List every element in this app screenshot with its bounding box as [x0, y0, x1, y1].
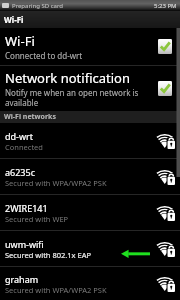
staticText: 2WIRE141 [5, 202, 48, 214]
staticText: 5:23 PM [154, 2, 177, 10]
staticText: Wi-Fi [5, 32, 35, 50]
staticText: Wi-Fi [4, 14, 24, 25]
staticText: Notify me when an open network is availa… [5, 87, 139, 108]
button[interactable]: graham [0, 267, 180, 300]
staticText: Secured with WEP [5, 214, 69, 224]
staticText: dd-wrt [5, 130, 34, 142]
staticText: Connected [5, 142, 43, 152]
staticText: a6235c [5, 166, 35, 178]
staticText: graham [5, 273, 39, 285]
staticText: Secured with WPA/WPA2 PSK [5, 178, 107, 188]
staticText: Preparing SD card [12, 2, 63, 10]
staticText: Secured with 802.1x EAP [5, 250, 92, 260]
staticText: Connected to dd-wrt [5, 50, 83, 61]
button[interactable]: Wi-Fi [0, 28, 180, 65]
button[interactable]: a6235c [0, 159, 180, 194]
staticText: Secured with WPA/WPA2 PSK [5, 285, 107, 295]
staticText: Network notification [5, 69, 130, 87]
staticText: Wi-Fi networks [4, 112, 56, 122]
button[interactable]: Network notification [0, 66, 180, 111]
staticText: uwm-wifi [5, 238, 44, 250]
button[interactable]: uwm-wifi [0, 231, 180, 266]
button[interactable]: dd-wrt [0, 123, 180, 158]
button[interactable]: 2WIRE141 [0, 195, 180, 230]
